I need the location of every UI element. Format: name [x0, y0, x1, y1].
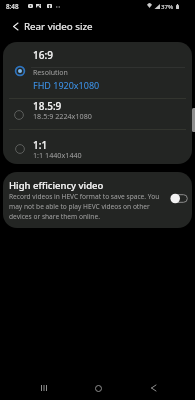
button[interactable]: 16:9 — [3, 42, 192, 98]
staticText: 16:9 — [33, 48, 53, 62]
staticText: 1:1 1440x1440 — [33, 150, 82, 160]
button[interactable]: Home — [86, 376, 110, 400]
staticText: Resolution — [33, 68, 68, 78]
staticText: 1:1 — [33, 138, 48, 152]
staticText: High efficiency video — [9, 179, 104, 192]
button[interactable]: Recent apps — [32, 376, 56, 400]
staticText: 18.5:9 — [33, 99, 62, 113]
button[interactable]: High efficiency video — [3, 172, 192, 228]
staticText: FHD 1920x1080 — [33, 79, 100, 91]
staticText: Rear video size — [24, 20, 93, 33]
staticText: 18.5:9 2224x1080 — [33, 111, 92, 121]
button[interactable]: High efficiency video switch — [162, 188, 190, 206]
button[interactable]: Back — [141, 376, 165, 400]
staticText: Record videos in HEVC format to save spa… — [9, 192, 166, 220]
staticText: 8:48 — [6, 2, 19, 11]
button[interactable]: 18.5:9 — [3, 99, 192, 129]
button[interactable]: Navigate up — [4, 16, 26, 36]
button[interactable]: 1:1 — [3, 130, 192, 164]
staticText: 37% — [161, 2, 174, 10]
